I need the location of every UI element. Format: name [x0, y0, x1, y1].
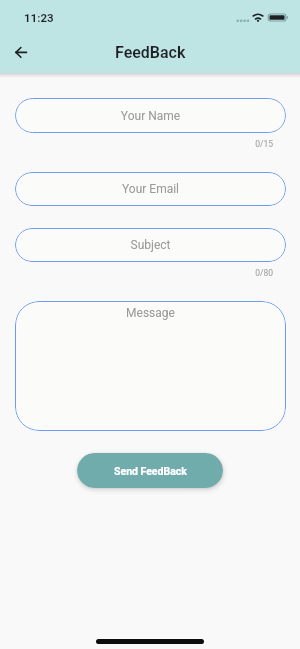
- staticText: 0/80: [15, 268, 273, 278]
- button[interactable]: Your Email: [15, 172, 286, 206]
- staticText: Your Email: [15, 182, 286, 196]
- button[interactable]: Your Name: [15, 98, 286, 133]
- staticText: Subject: [15, 238, 286, 252]
- staticText: Message: [15, 306, 286, 320]
- button[interactable]: Message: [15, 301, 286, 431]
- staticText: Send FeedBack: [114, 465, 187, 477]
- button[interactable]: Back: [7, 38, 35, 66]
- staticText: FeedBack: [115, 43, 186, 62]
- staticText: Your Name: [15, 109, 286, 123]
- button[interactable]: Send FeedBack: [77, 453, 223, 488]
- staticText: 11:23: [24, 11, 54, 24]
- button[interactable]: Subject: [15, 228, 286, 262]
- staticText: 0/15: [15, 139, 273, 149]
